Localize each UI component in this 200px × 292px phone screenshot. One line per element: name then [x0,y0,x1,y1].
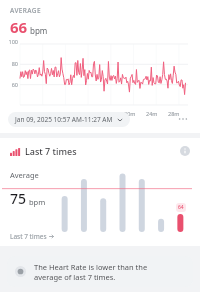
staticText: AVERAGE [10,6,41,15]
button[interactable]: Last 7 times [0,138,200,164]
staticText: 75 [10,189,27,208]
staticText: Jan 09, 2025 10:57 AM-11:27 AM [15,115,113,124]
staticText: 0m [17,110,26,117]
staticText: 12m [80,110,92,117]
staticText: 60 [11,81,18,88]
staticText: bpm [30,25,48,36]
staticText: 16m [102,110,114,117]
button[interactable]: The Heart Rate is lower than the [7,256,193,287]
staticText: 64 [178,204,184,211]
staticText: 66 [10,17,28,37]
staticText: 20m [124,110,136,117]
staticText: Last 7 times [10,232,47,241]
staticText: The Heart Rate is lower than the [34,262,148,272]
button[interactable]: Last 7 times [10,232,54,241]
button[interactable]: Information [178,144,192,158]
staticText: Average [10,170,39,180]
staticText: 8m [59,110,68,117]
staticText: bpm [29,197,46,207]
staticText: 24m [146,110,158,117]
staticText: average of last 7 times. [34,272,116,282]
staticText: 80 [11,60,18,67]
button[interactable]: More options [174,110,192,128]
button[interactable]: Jan 09, 2025 10:57 AM-11:27 AM [8,112,130,127]
staticText: 100 [8,38,18,45]
staticText: Last 7 times [25,145,77,157]
staticText: 28m [168,110,180,117]
staticText: 4m [38,110,47,117]
